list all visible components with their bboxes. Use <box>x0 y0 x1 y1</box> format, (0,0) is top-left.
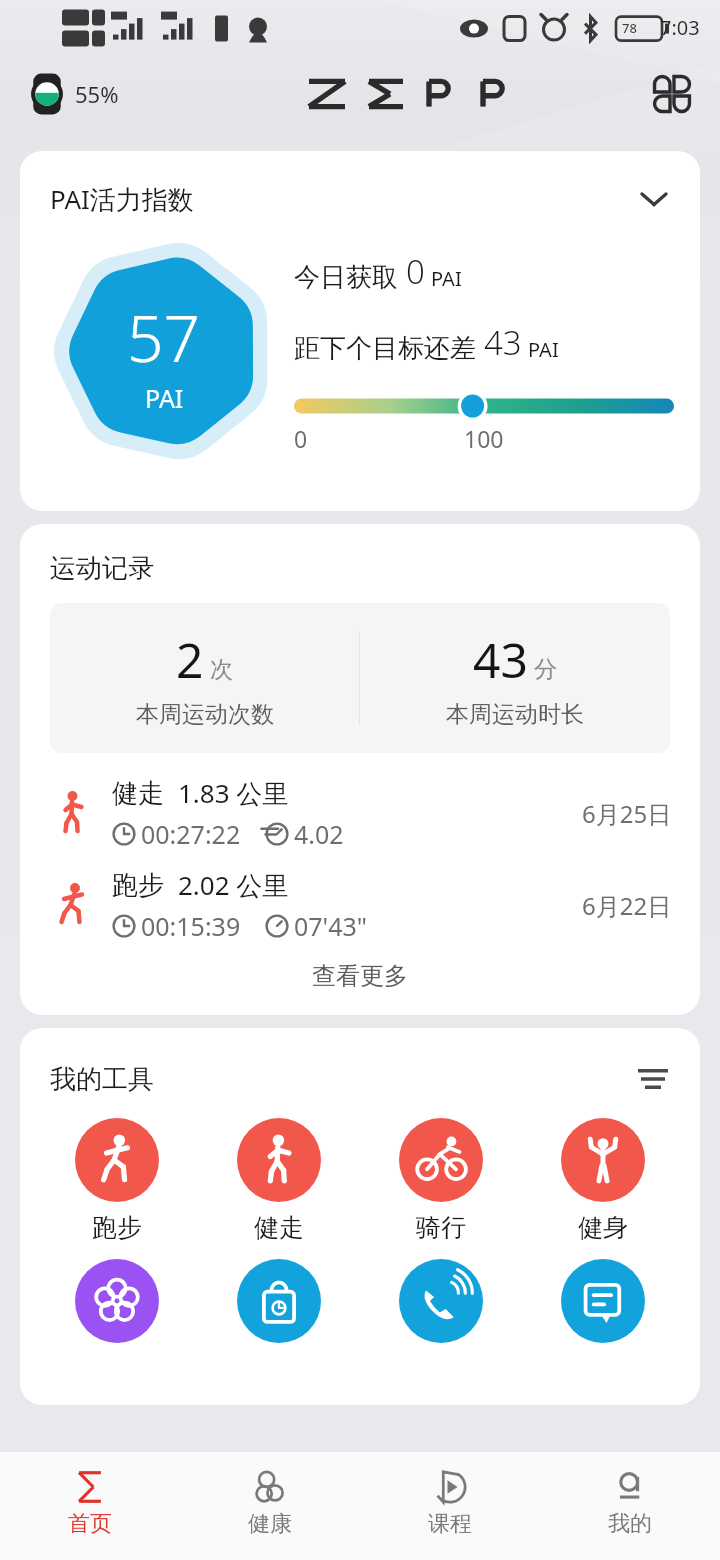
staticText: 6月22日 <box>582 889 672 922</box>
staticText: 57 <box>127 294 201 381</box>
other: msg <box>561 1259 645 1343</box>
staticText: 骑行 <box>416 1212 466 1243</box>
other: 健走 <box>237 1118 321 1202</box>
button[interactable]: 健身 <box>522 1116 684 1245</box>
button[interactable]: 跑步 <box>36 1116 198 1245</box>
staticText: 课程 <box>428 1510 472 1538</box>
button[interactable]: msg <box>522 1257 684 1345</box>
other: call <box>399 1259 483 1343</box>
staticText: 100 <box>464 423 504 454</box>
button[interactable]: lotus <box>36 1257 198 1345</box>
staticText: 78 <box>622 19 637 37</box>
staticText: PAI <box>528 336 559 363</box>
staticText: 7:03 <box>660 14 700 41</box>
staticText: 跑步 <box>92 1212 142 1243</box>
staticText: 跑步 <box>112 869 164 902</box>
staticText: 6月25日 <box>582 797 672 830</box>
button[interactable]: Collapse <box>632 177 676 221</box>
staticText: 首页 <box>68 1510 112 1538</box>
other: lotus <box>75 1259 159 1343</box>
staticText: 健走 <box>112 777 164 810</box>
staticText: 健康 <box>248 1510 292 1538</box>
staticText: 分 <box>534 655 557 684</box>
staticText: 今日获取 <box>294 261 398 294</box>
staticText: PAI <box>431 265 462 292</box>
other: 骑行 <box>399 1118 483 1202</box>
other: 健身 <box>561 1118 645 1202</box>
other: 跑步 <box>75 1118 159 1202</box>
staticText: 我的工具 <box>50 1063 154 1096</box>
button[interactable]: 首页 <box>0 1452 180 1560</box>
staticText: 0 <box>406 249 425 294</box>
staticText: 运动记录 <box>50 552 154 585</box>
staticText: 07'43" <box>294 909 368 943</box>
staticText: 本周运动次数 <box>136 700 274 729</box>
staticText: 我的 <box>608 1510 652 1538</box>
staticText: 0 <box>294 423 308 454</box>
button[interactable]: Edit tools <box>630 1056 676 1102</box>
button[interactable]: 跑步 <box>20 859 700 951</box>
staticText: 00:15:39 <box>141 909 241 943</box>
other: bag <box>237 1259 321 1343</box>
button[interactable]: bag <box>198 1257 360 1345</box>
staticText: 43 <box>484 320 522 365</box>
button[interactable]: 55% <box>22 69 123 119</box>
button[interactable]: 健康 <box>180 1452 360 1560</box>
button[interactable]: call <box>360 1257 522 1345</box>
staticText: 55% <box>75 79 119 109</box>
button[interactable]: 健走 <box>20 767 700 859</box>
staticText: 4.02 <box>294 817 344 851</box>
staticText: PAI <box>145 381 184 415</box>
button[interactable]: 骑行 <box>360 1116 522 1245</box>
button[interactable]: PAI活力指数 <box>20 151 700 511</box>
button[interactable]: 健走 <box>198 1116 360 1245</box>
staticText: 本周运动时长 <box>446 700 584 729</box>
button[interactable]: 我的 <box>540 1452 720 1560</box>
staticText: 00:27:22 <box>141 817 241 851</box>
staticText: 距下个目标还差 <box>294 332 476 365</box>
button[interactable]: 查看更多 <box>20 951 700 1001</box>
staticText: 2 <box>176 627 204 692</box>
button[interactable]: 2 <box>50 603 670 753</box>
staticText: 43 <box>473 627 528 692</box>
button[interactable]: 课程 <box>360 1452 540 1560</box>
staticText: 查看更多 <box>312 961 408 991</box>
button[interactable]: Apps <box>646 68 698 120</box>
staticText: 次 <box>210 655 233 684</box>
staticText: 健身 <box>578 1212 628 1243</box>
staticText: 1.83 公里 <box>178 775 289 811</box>
staticText: 健走 <box>254 1212 304 1243</box>
staticText: PAI活力指数 <box>50 181 194 217</box>
staticText: 2.02 公里 <box>178 867 289 903</box>
